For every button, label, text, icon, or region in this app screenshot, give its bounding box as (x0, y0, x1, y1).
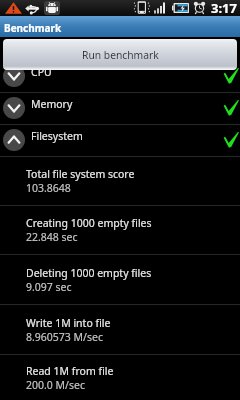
button[interactable]: Creating 1000 empty files (0, 206, 240, 254)
staticText: Benchmark (4, 21, 62, 35)
button[interactable]: CPU (0, 61, 240, 92)
staticText: 200.0 M/sec (26, 378, 85, 392)
button[interactable]: Write 1M into file (0, 305, 240, 354)
staticText: 8.960573 M/sec (26, 330, 104, 344)
staticText: Filesystem (31, 129, 83, 143)
button[interactable]: Deleting 1000 empty files (0, 255, 240, 304)
staticText: Write 1M into file (26, 316, 111, 330)
staticText: Total file system score (26, 167, 135, 181)
button[interactable]: Run benchmark (3, 39, 237, 70)
staticText: 22.848 sec (26, 230, 78, 244)
staticText: Deleting 1000 empty files (26, 266, 152, 280)
staticText: Run benchmark (82, 48, 159, 62)
staticText: Creating 1000 empty files (26, 216, 152, 230)
button[interactable]: Total file system score (0, 157, 240, 205)
staticText: 103.8648 (26, 181, 71, 195)
staticText: 3:17 (211, 0, 237, 15)
staticText: 9.097 sec (26, 280, 72, 294)
button[interactable]: Memory (0, 93, 240, 124)
button[interactable]: Filesystem (0, 125, 240, 156)
staticText: CPU (31, 65, 52, 79)
staticText: Memory (31, 97, 73, 111)
button[interactable]: Read 1M from file (0, 355, 240, 400)
staticText: Read 1M from file (26, 364, 114, 378)
